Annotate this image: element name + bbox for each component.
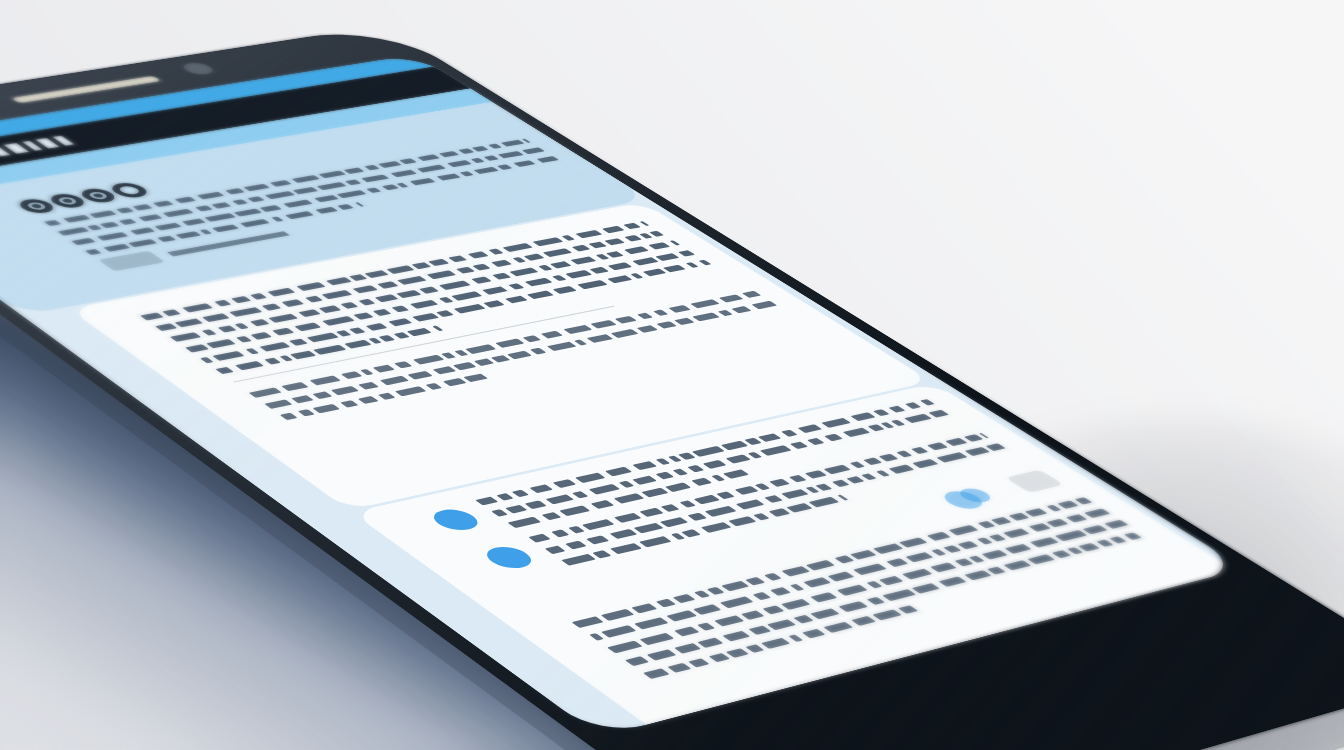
button[interactable]: Profile bbox=[351, 383, 1236, 725]
other: Cloud sync bbox=[930, 481, 1006, 514]
button[interactable] bbox=[68, 202, 932, 510]
other: Profile bbox=[418, 503, 494, 537]
button[interactable]: Profile bbox=[351, 383, 1236, 725]
button[interactable] bbox=[0, 102, 650, 316]
other: Profile bbox=[470, 540, 548, 575]
other: Profile bbox=[418, 503, 494, 537]
other: Profile bbox=[470, 540, 548, 575]
other: Cloud sync bbox=[930, 481, 1006, 514]
button[interactable] bbox=[0, 102, 650, 316]
button[interactable] bbox=[68, 202, 932, 510]
